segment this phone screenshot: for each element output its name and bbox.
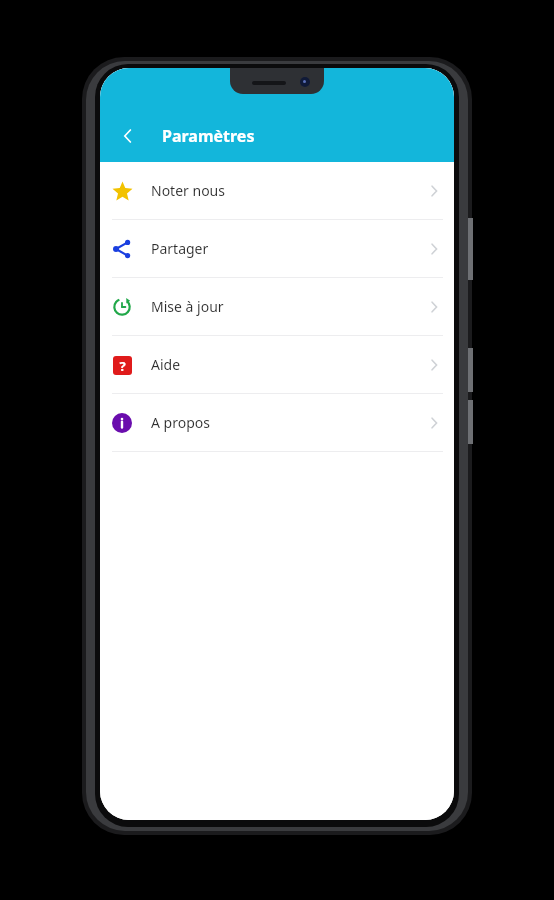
staticText: Aide [151,355,423,374]
staticText: Paramètres [162,125,255,147]
staticText: Mise à jour [151,297,423,316]
staticText: Noter nous [151,181,423,200]
button[interactable]: ? [100,336,454,393]
button[interactable]: Mise à jour [100,278,454,335]
button[interactable]: Back [108,116,148,156]
staticText: Partager [151,239,423,258]
button[interactable]: Partager [100,220,454,277]
button[interactable]: A propos [100,394,454,451]
staticText: ? [119,357,126,375]
button[interactable]: Noter nous [100,162,454,219]
staticText: A propos [151,413,423,432]
